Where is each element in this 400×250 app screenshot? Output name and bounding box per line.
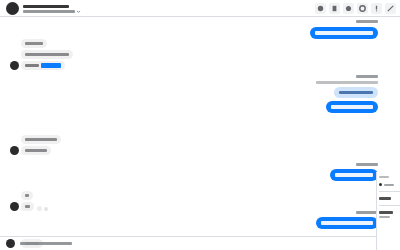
button[interactable]	[21, 61, 65, 70]
button[interactable]: Mute	[357, 3, 368, 14]
button[interactable]	[21, 191, 33, 200]
button[interactable]	[21, 239, 43, 248]
button[interactable]	[330, 169, 378, 181]
button[interactable]	[334, 87, 378, 98]
button[interactable]: Pin	[329, 3, 340, 14]
button[interactable]	[376, 172, 400, 250]
button[interactable]: Search	[315, 3, 326, 14]
button[interactable]	[21, 202, 34, 211]
button[interactable]	[316, 217, 378, 229]
button[interactable]	[21, 50, 73, 59]
button[interactable]: Profile	[6, 239, 15, 248]
button[interactable]: Info	[371, 3, 382, 14]
button[interactable]	[21, 146, 51, 155]
button[interactable]	[21, 135, 61, 144]
button[interactable]	[21, 39, 47, 48]
button[interactable]: Edit	[385, 3, 396, 14]
button[interactable]	[20, 242, 400, 245]
button[interactable]: React	[37, 206, 42, 211]
button[interactable]	[310, 27, 378, 39]
button[interactable]	[379, 197, 391, 200]
button[interactable]: Star	[343, 3, 354, 14]
button[interactable]	[6, 2, 19, 15]
button[interactable]	[326, 101, 378, 113]
